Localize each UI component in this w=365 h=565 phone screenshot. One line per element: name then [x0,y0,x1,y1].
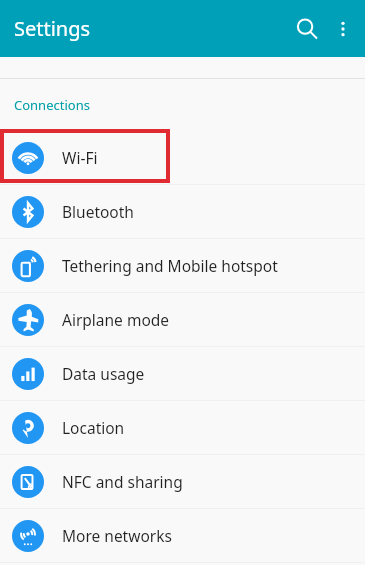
staticText: Data usage [62,363,145,384]
staticText: More networks [62,525,172,546]
button[interactable]: NFC and sharing [0,455,365,508]
staticText: Airplane mode [62,309,170,330]
staticText: Wi-Fi [62,147,98,168]
staticText: Tethering and Mobile hotspot [62,255,278,276]
button[interactable]: Data usage [0,347,365,400]
staticText: Settings [14,15,91,42]
button[interactable]: More options [321,7,365,51]
button[interactable]: Tethering and Mobile hotspot [0,239,365,292]
staticText: Location [62,417,125,438]
staticText: Bluetooth [62,201,134,222]
button[interactable]: Airplane mode [0,293,365,346]
button[interactable]: Location [0,401,365,454]
button[interactable]: More networks [0,509,365,562]
button[interactable]: Wi-Fi [0,131,365,184]
button[interactable]: Bluetooth [0,185,365,238]
staticText: NFC and sharing [62,471,183,492]
staticText: Connections [14,96,90,114]
button[interactable]: Search [285,7,329,51]
